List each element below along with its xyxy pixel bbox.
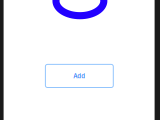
button[interactable]: Add <box>45 64 113 87</box>
staticText: Add <box>73 72 85 80</box>
